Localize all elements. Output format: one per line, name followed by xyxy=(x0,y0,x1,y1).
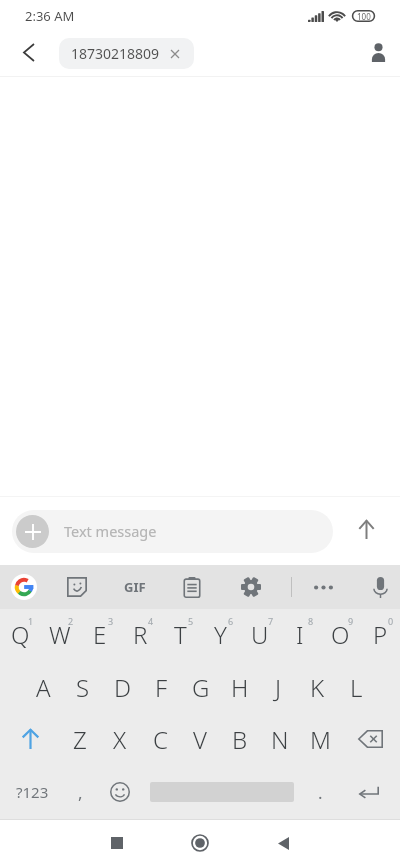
staticText: B xyxy=(232,723,248,756)
staticText: S xyxy=(76,671,90,704)
button[interactable]: J xyxy=(259,661,298,713)
button[interactable]: Send xyxy=(338,495,395,563)
staticText: X xyxy=(113,723,127,756)
staticText: I xyxy=(296,618,304,651)
button[interactable]: K xyxy=(298,661,337,713)
staticText: N xyxy=(271,723,289,756)
button[interactable]: . xyxy=(300,765,340,819)
button[interactable]: Home xyxy=(160,820,240,866)
staticText: T xyxy=(174,618,187,651)
staticText: U xyxy=(251,618,269,651)
staticText: P xyxy=(373,618,388,651)
button[interactable]: , xyxy=(64,765,96,819)
button[interactable]: Q xyxy=(0,609,40,661)
staticText: ?123 xyxy=(16,782,49,802)
staticText: 2 xyxy=(68,615,74,627)
staticText: 0 xyxy=(388,615,394,627)
staticText: 18730218809 xyxy=(71,44,160,63)
button[interactable]: Back xyxy=(240,820,326,866)
staticText: G xyxy=(192,671,210,704)
button[interactable]: Attach xyxy=(12,510,333,553)
button[interactable]: N xyxy=(260,713,300,765)
staticText: Y xyxy=(214,618,227,651)
button[interactable]: Recent apps xyxy=(74,820,160,866)
staticText: D xyxy=(114,671,132,704)
button[interactable]: Enter xyxy=(340,765,400,819)
button[interactable]: Voice input xyxy=(346,565,400,609)
staticText: 8 xyxy=(308,615,314,627)
button[interactable]: Stickers xyxy=(48,565,106,609)
staticText: O xyxy=(331,618,350,651)
button[interactable]: B xyxy=(220,713,260,765)
staticText: Q xyxy=(11,618,30,651)
staticText: J xyxy=(275,671,282,704)
staticText: 7 xyxy=(268,615,274,627)
staticText: 3 xyxy=(108,615,114,627)
staticText: , xyxy=(78,781,83,804)
button[interactable]: Contact details xyxy=(356,31,400,75)
staticText: Text message xyxy=(64,521,157,541)
staticText: 9 xyxy=(348,615,354,627)
staticText: . xyxy=(318,781,323,804)
staticText: M xyxy=(310,723,331,756)
staticText: H xyxy=(231,671,249,704)
button[interactable]: A xyxy=(23,661,63,713)
staticText: GIF xyxy=(124,578,146,596)
staticText: F xyxy=(155,671,168,704)
button[interactable]: U xyxy=(240,609,280,661)
button[interactable]: Google search xyxy=(0,565,48,609)
staticText: L xyxy=(350,671,363,704)
button[interactable]: T xyxy=(160,609,200,661)
button[interactable]: V xyxy=(180,713,220,765)
button[interactable]: I xyxy=(280,609,320,661)
button[interactable]: Settings xyxy=(220,565,282,609)
button[interactable]: L xyxy=(337,661,376,713)
button[interactable]: E xyxy=(80,609,120,661)
staticText: V xyxy=(193,723,207,756)
button[interactable]: Shift xyxy=(0,713,60,765)
button[interactable]: D xyxy=(103,661,142,713)
button[interactable]: G xyxy=(181,661,220,713)
button[interactable]: O xyxy=(320,609,360,661)
button[interactable]: Z xyxy=(60,713,100,765)
staticText: 1 xyxy=(28,615,34,627)
staticText: 6 xyxy=(228,615,234,627)
button[interactable]: GIF xyxy=(106,565,164,609)
staticText: Z xyxy=(73,723,87,756)
button[interactable]: Space xyxy=(144,765,300,819)
staticText: 5 xyxy=(188,615,194,627)
button[interactable]: P xyxy=(360,609,400,661)
button[interactable]: F xyxy=(142,661,181,713)
button[interactable]: R xyxy=(120,609,160,661)
button[interactable]: Clipboard xyxy=(164,565,220,609)
button[interactable]: Back xyxy=(6,31,50,75)
staticText: 100 xyxy=(357,11,371,22)
staticText: C xyxy=(153,723,168,756)
button[interactable]: Symbols xyxy=(0,765,64,819)
button[interactable]: X xyxy=(100,713,140,765)
button[interactable]: More options xyxy=(300,565,346,609)
button[interactable]: M xyxy=(300,713,340,765)
button[interactable]: Emoji xyxy=(96,765,144,819)
other: Attach xyxy=(16,515,49,548)
staticText: W xyxy=(49,618,71,651)
button[interactable]: S xyxy=(63,661,103,713)
staticText: 4 xyxy=(148,615,154,627)
staticText: 2:36 AM xyxy=(25,7,75,25)
button[interactable]: C xyxy=(140,713,180,765)
button[interactable]: 18730218809 xyxy=(59,38,194,69)
button[interactable]: Backspace xyxy=(340,713,400,765)
button[interactable]: Y xyxy=(200,609,240,661)
staticText: A xyxy=(36,671,51,704)
button[interactable]: W xyxy=(40,609,80,661)
staticText: K xyxy=(310,671,325,704)
button[interactable]: H xyxy=(220,661,259,713)
staticText: R xyxy=(133,618,148,651)
staticText: E xyxy=(93,618,107,651)
